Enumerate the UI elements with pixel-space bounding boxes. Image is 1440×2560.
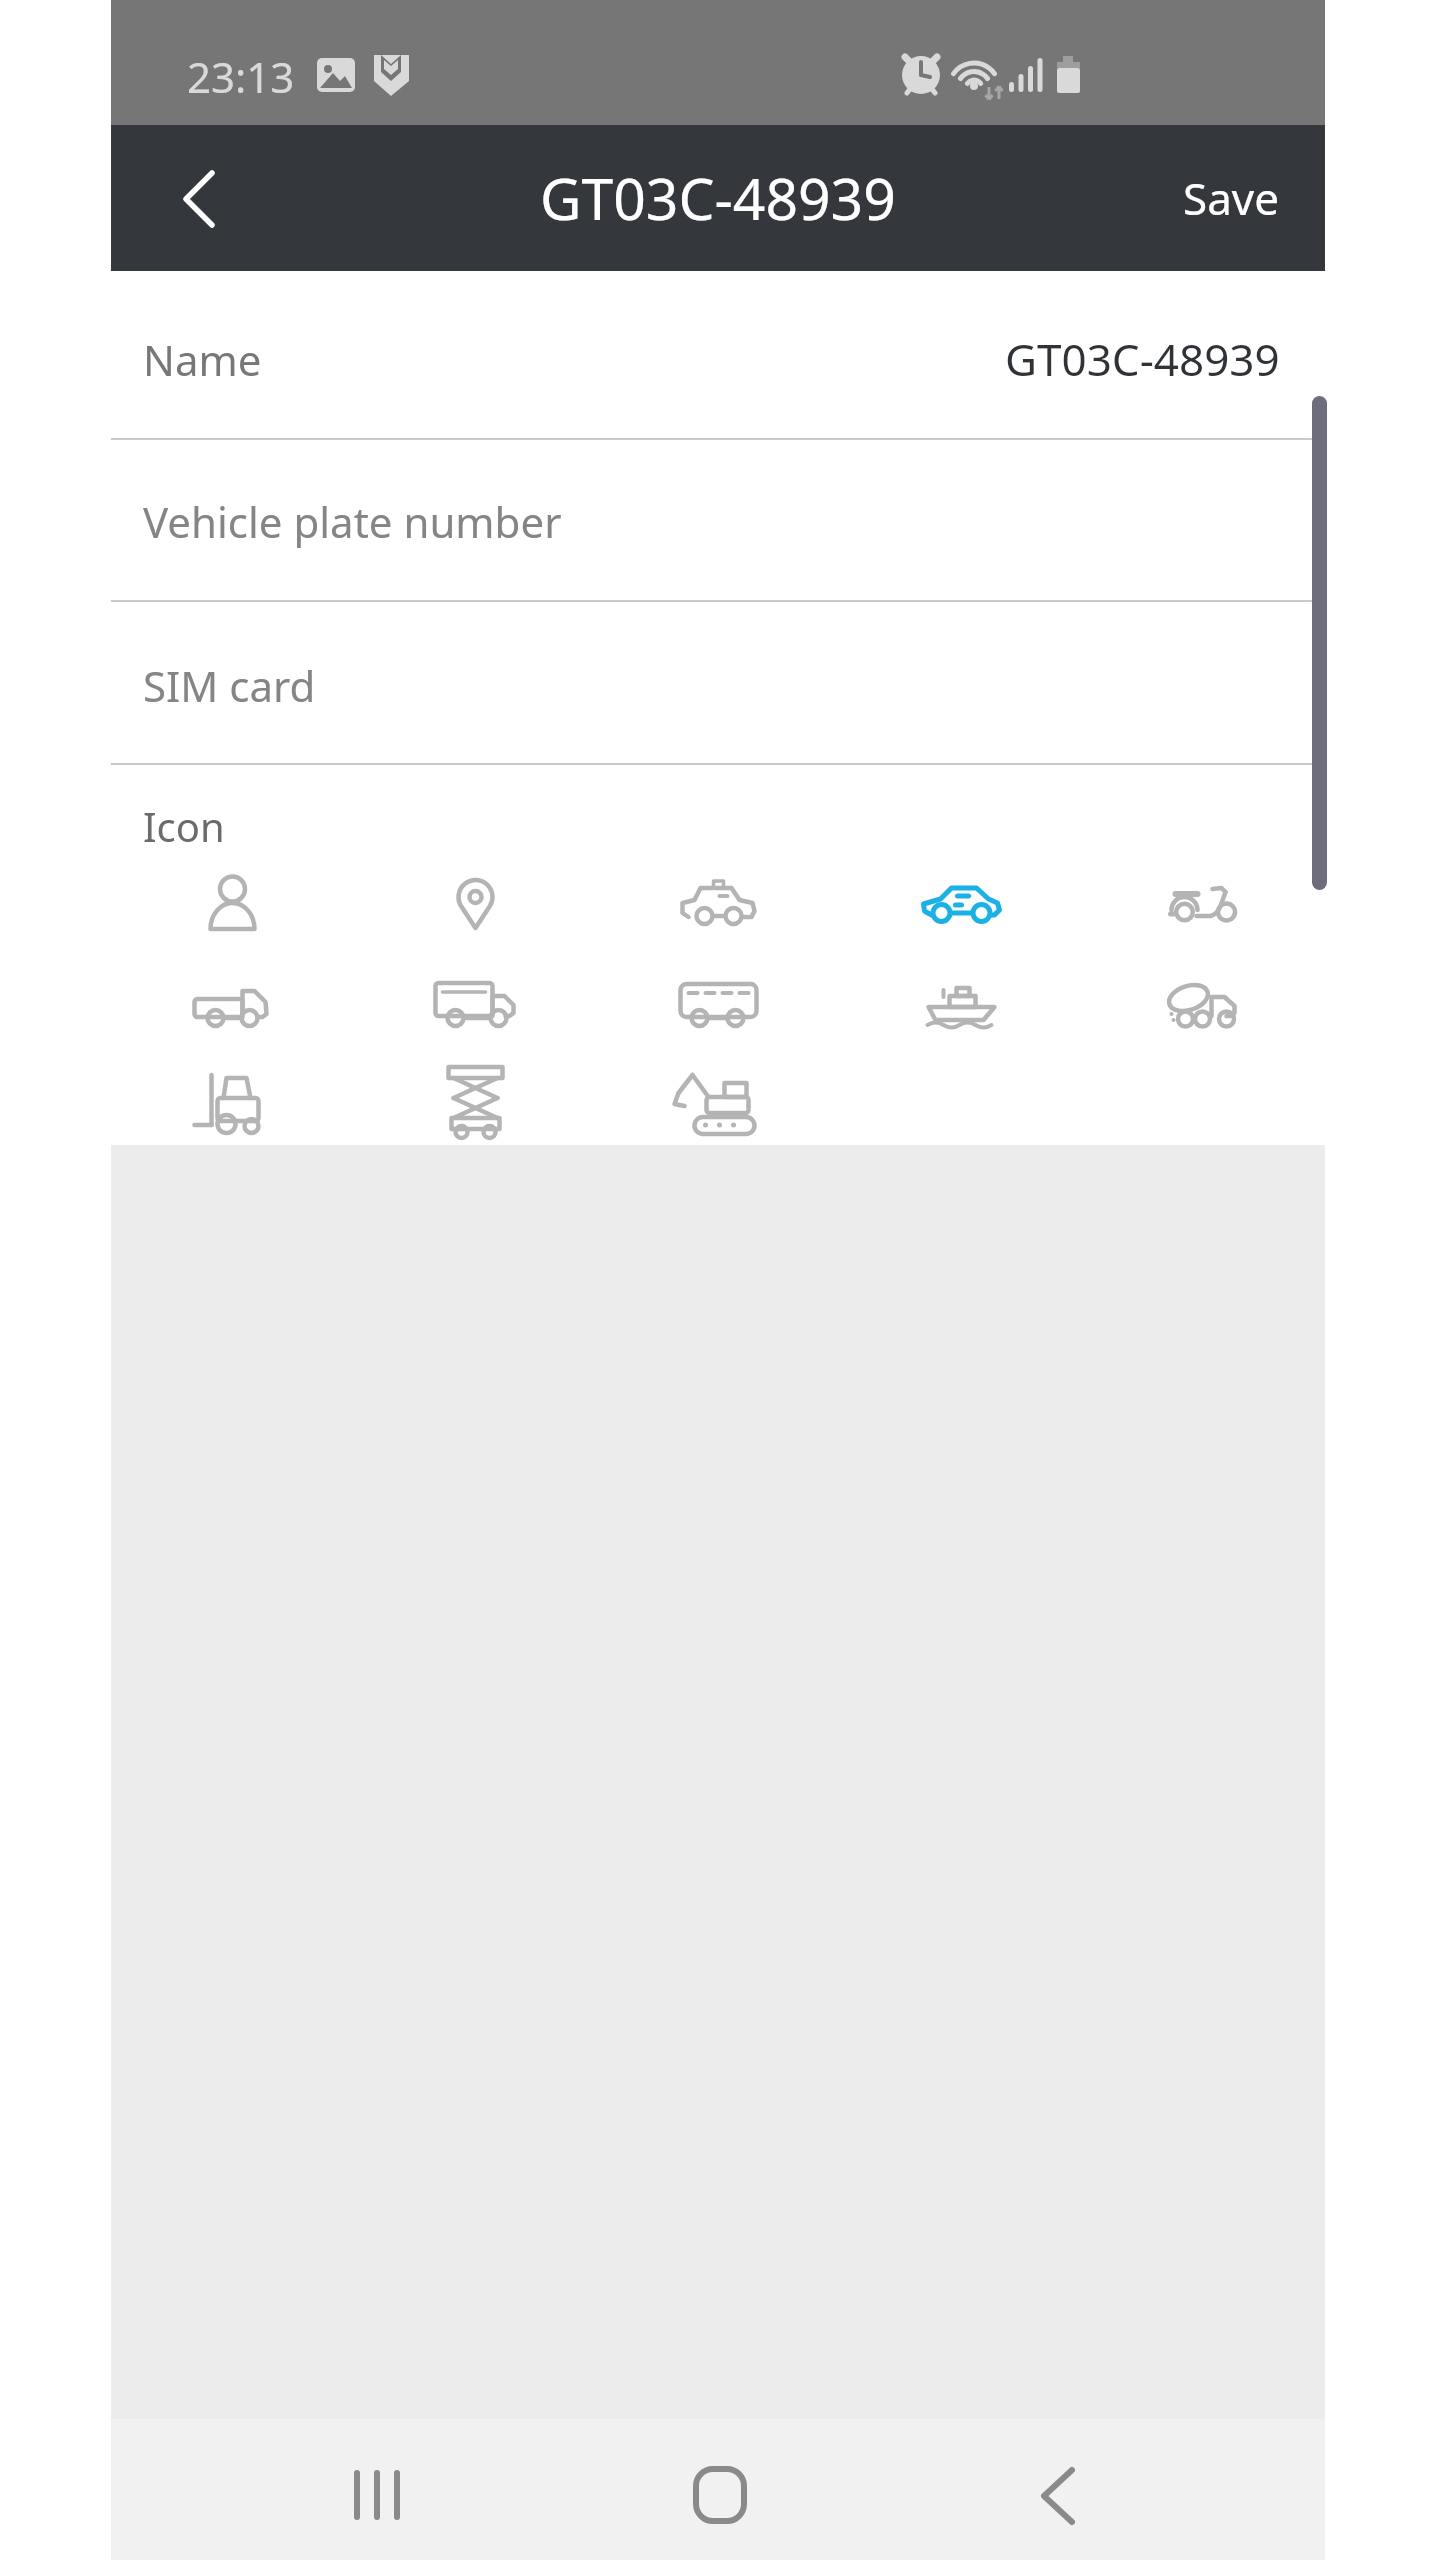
button[interactable] [354,1056,597,1151]
button[interactable] [1083,858,1326,953]
staticText: 23:13 [187,48,295,105]
staticText: Save [1183,168,1280,228]
button[interactable] [597,858,840,953]
staticText: GT03C-48939 [540,159,896,237]
button[interactable] [111,959,354,1054]
button[interactable] [300,2430,460,2560]
button[interactable] [111,271,1325,439]
button[interactable] [840,858,1083,953]
button[interactable] [111,440,1325,601]
staticText: SIM card [143,657,316,714]
button[interactable] [111,602,1325,764]
button[interactable] [840,959,1083,1054]
button[interactable] [354,959,597,1054]
button[interactable] [597,1056,840,1151]
button[interactable] [354,858,597,953]
staticText: GT03C-48939 [1005,329,1280,389]
button[interactable] [597,959,840,1054]
button[interactable] [1083,959,1326,1054]
button[interactable] [640,2430,800,2560]
button[interactable] [980,2430,1140,2560]
button[interactable]: Save [1130,125,1280,271]
button[interactable] [150,148,250,248]
staticText: Icon [143,799,225,853]
button[interactable] [111,1056,354,1151]
staticText: Vehicle plate number [143,493,562,550]
button[interactable] [111,858,354,953]
staticText: Name [143,331,262,388]
